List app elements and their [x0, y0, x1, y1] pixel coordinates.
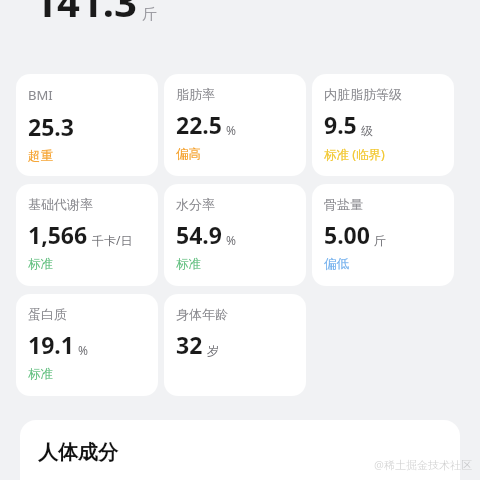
staticText: 人体成分 — [38, 440, 118, 465]
staticText: % — [226, 232, 236, 248]
staticText: 内脏脂肪等级 — [324, 86, 402, 102]
staticText: 54.9 — [176, 219, 222, 250]
staticText: 1,566 — [28, 219, 88, 250]
staticText: 标准 — [28, 366, 53, 382]
staticText: 蛋白质 — [28, 306, 67, 322]
staticText: 偏低 — [324, 256, 349, 272]
staticText: 骨盐量 — [324, 196, 363, 212]
staticText: 标准 (临界) — [324, 146, 385, 163]
button[interactable]: 蛋白质 — [16, 294, 158, 396]
staticText: 脂肪率 — [176, 86, 215, 102]
staticText: 岁 — [207, 343, 219, 358]
staticText: 身体年龄 — [176, 306, 228, 322]
staticText: 32 — [176, 329, 203, 360]
staticText: % — [226, 122, 236, 138]
button[interactable]: 骨盐量 — [312, 184, 454, 286]
button[interactable]: 身体年龄 — [164, 294, 306, 396]
staticText: 斤 — [374, 233, 386, 248]
staticText: 22.5 — [176, 109, 222, 140]
staticText: BMI — [28, 86, 53, 104]
staticText: % — [78, 342, 88, 358]
staticText: 19.1 — [28, 329, 74, 360]
staticText: 5.00 — [324, 219, 370, 250]
staticText: 超重 — [28, 148, 53, 164]
staticText: 标准 — [176, 256, 201, 272]
button[interactable]: 基础代谢率 — [16, 184, 158, 286]
staticText: 斤 — [142, 5, 157, 24]
button[interactable]: 水分率 — [164, 184, 306, 286]
button[interactable]: BMI — [16, 74, 158, 176]
button[interactable]: 人体成分 — [20, 420, 460, 480]
staticText: 基础代谢率 — [28, 196, 93, 212]
staticText: 级 — [361, 123, 373, 138]
staticText: 141.3 — [34, 0, 137, 28]
button[interactable]: 脂肪率 — [164, 74, 306, 176]
staticText: 标准 — [28, 256, 53, 272]
staticText: 25.3 — [28, 111, 74, 142]
staticText: 偏高 — [176, 146, 201, 162]
button[interactable]: 内脏脂肪等级 — [312, 74, 454, 176]
staticText: 水分率 — [176, 196, 215, 212]
staticText: 9.5 — [324, 109, 357, 140]
staticText: @稀土掘金技术社区 — [374, 457, 472, 472]
staticText: 千卡/日 — [92, 232, 133, 248]
